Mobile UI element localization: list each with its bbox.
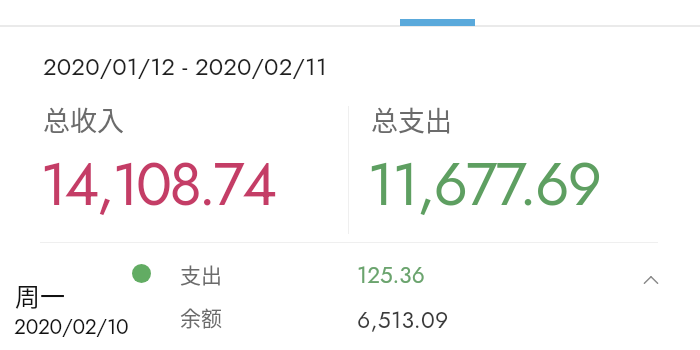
button[interactable]: 2020/01/12 - 2020/02/11 bbox=[30, 36, 350, 82]
button[interactable]: 总支出 bbox=[352, 92, 676, 234]
staticText: 余额 bbox=[180, 302, 222, 332]
staticText: 125.36 bbox=[357, 259, 425, 292]
staticText: 支出 bbox=[180, 259, 222, 289]
staticText: 11,677.69 bbox=[367, 141, 601, 228]
staticText: 总支出 bbox=[371, 100, 452, 139]
staticText: 6,513.09 bbox=[357, 303, 449, 336]
staticText: 2020/02/10 bbox=[14, 312, 129, 342]
staticText: 14,108.74 bbox=[40, 141, 275, 228]
button[interactable]: 周一 bbox=[0, 248, 700, 350]
button[interactable]: 总收入 bbox=[20, 92, 344, 234]
button[interactable]: Collapse day details bbox=[634, 263, 668, 297]
staticText: 总收入 bbox=[43, 100, 124, 139]
button[interactable]: 收入 tab bbox=[160, 0, 320, 26]
staticText: 2020/01/12 - 2020/02/11 bbox=[43, 49, 327, 84]
staticText: 周一 bbox=[15, 277, 66, 313]
button[interactable]: 支出 tab, selected bbox=[360, 0, 515, 26]
